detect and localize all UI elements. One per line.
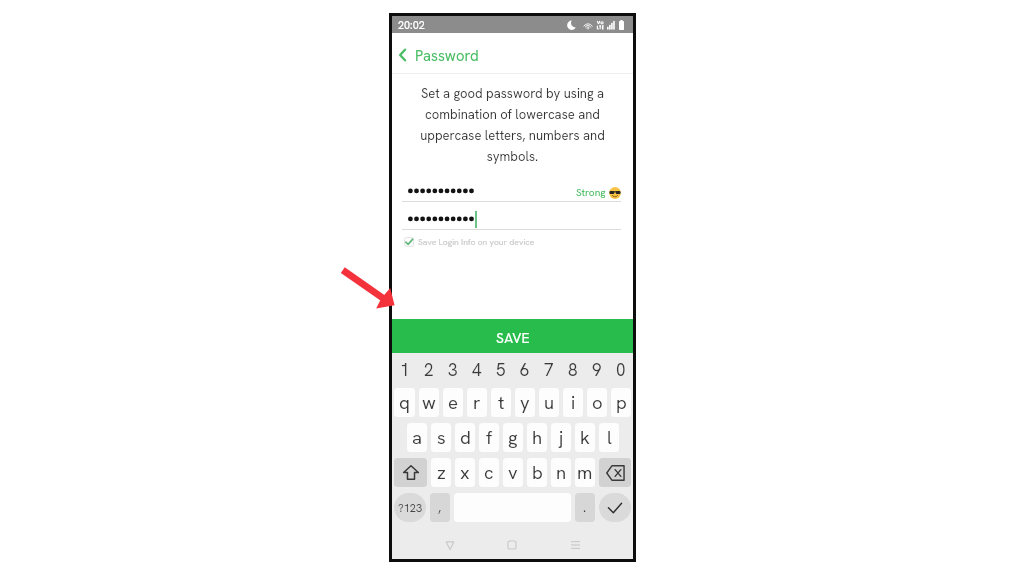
- button[interactable]: d: [455, 423, 475, 452]
- staticText: 1: [400, 359, 410, 381]
- staticText: t: [498, 390, 505, 414]
- staticText: j: [559, 425, 564, 449]
- button[interactable]: Password: [415, 46, 479, 65]
- button[interactable]: v: [503, 458, 523, 487]
- button[interactable]: f: [479, 423, 499, 452]
- staticText: x: [460, 460, 470, 484]
- staticText: w: [422, 390, 436, 414]
- button[interactable]: e: [443, 388, 463, 417]
- staticText: u: [544, 390, 555, 414]
- button[interactable]: k: [575, 423, 595, 452]
- button[interactable]: 5: [489, 353, 513, 385]
- staticText: z: [437, 460, 446, 484]
- staticText: 7: [544, 359, 554, 381]
- staticText: o: [592, 390, 603, 414]
- staticText: 3: [448, 359, 458, 381]
- button[interactable]: u: [539, 388, 559, 417]
- button[interactable]: Save Login Info on your device: [404, 236, 535, 247]
- staticText: 0: [616, 359, 626, 381]
- staticText: d: [460, 425, 471, 449]
- staticText: a: [412, 425, 422, 449]
- staticText: b: [532, 460, 543, 484]
- button[interactable]: Home: [506, 539, 518, 551]
- button[interactable]: 1: [392, 353, 417, 385]
- button[interactable]: g: [503, 423, 523, 452]
- button[interactable]: Recent apps: [569, 539, 581, 551]
- button[interactable]: ?123: [394, 493, 426, 522]
- button[interactable]: b: [527, 458, 547, 487]
- button[interactable]: .: [575, 493, 595, 522]
- button[interactable]: 2: [417, 353, 441, 385]
- staticText: .: [583, 499, 587, 516]
- staticText: v: [508, 460, 518, 484]
- button[interactable]: t: [491, 388, 511, 417]
- staticText: r: [473, 390, 481, 414]
- staticText: n: [556, 460, 567, 484]
- button[interactable]: 0: [609, 353, 633, 385]
- button[interactable]: w: [419, 388, 439, 417]
- button[interactable]: x: [455, 458, 475, 487]
- button[interactable]: y: [515, 388, 535, 417]
- button[interactable]: 4: [465, 353, 489, 385]
- button[interactable]: r: [467, 388, 487, 417]
- staticText: s: [437, 425, 446, 449]
- staticText: h: [532, 425, 543, 449]
- staticText: ?123: [398, 501, 423, 515]
- button[interactable]: c: [479, 458, 499, 487]
- staticText: Save Login Info on your device: [418, 236, 535, 247]
- staticText: 4: [472, 359, 482, 381]
- button[interactable]: n: [551, 458, 571, 487]
- button[interactable]: Back: [444, 539, 456, 551]
- staticText: Strong: [576, 186, 606, 199]
- staticText: p: [616, 390, 627, 414]
- button[interactable]: 7: [537, 353, 561, 385]
- button[interactable]: [402, 212, 621, 229]
- staticText: SAVE: [496, 329, 530, 347]
- staticText: g: [508, 425, 518, 449]
- button[interactable]: Shift: [394, 458, 427, 487]
- button[interactable]: 8: [561, 353, 585, 385]
- staticText: ,: [438, 499, 442, 516]
- button[interactable]: j: [551, 423, 571, 452]
- button[interactable]: ,: [430, 493, 450, 522]
- staticText: m: [577, 460, 593, 484]
- button[interactable]: o: [587, 388, 607, 417]
- button[interactable]: l: [599, 423, 619, 452]
- button[interactable]: q: [394, 388, 415, 417]
- button[interactable]: p: [611, 388, 631, 417]
- button[interactable]: a: [407, 423, 427, 452]
- staticText: k: [580, 425, 590, 449]
- staticText: e: [448, 390, 458, 414]
- button[interactable]: 6: [513, 353, 537, 385]
- button[interactable]: Strong: [402, 184, 621, 201]
- button[interactable]: i: [563, 388, 583, 417]
- button[interactable]: s: [431, 423, 451, 452]
- staticText: q: [399, 390, 410, 414]
- staticText: i: [571, 390, 576, 414]
- button[interactable]: Back: [393, 46, 411, 64]
- button[interactable]: 9: [585, 353, 609, 385]
- button[interactable]: 3: [441, 353, 465, 385]
- button[interactable]: m: [575, 458, 595, 487]
- staticText: y: [520, 390, 530, 414]
- staticText: 2: [424, 359, 434, 381]
- staticText: c: [484, 460, 494, 484]
- staticText: 6: [520, 359, 530, 381]
- staticText: 5: [496, 359, 506, 381]
- staticText: 8: [568, 359, 578, 381]
- staticText: 9: [592, 359, 602, 381]
- staticText: f: [486, 425, 493, 449]
- button[interactable]: Done: [599, 493, 631, 522]
- button[interactable]: z: [431, 458, 451, 487]
- staticText: Set a good password by using a combinati…: [413, 85, 612, 165]
- staticText: l: [607, 425, 612, 449]
- button[interactable]: h: [527, 423, 547, 452]
- button[interactable]: Backspace: [599, 458, 631, 487]
- button[interactable]: SAVE: [392, 319, 633, 353]
- staticText: 20:02: [398, 18, 425, 32]
